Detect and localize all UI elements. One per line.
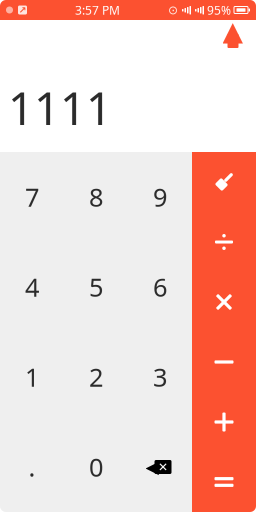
staticText: ◀ — [145, 457, 158, 477]
button[interactable]: Backspace — [128, 422, 192, 512]
staticText: 6 — [153, 270, 167, 304]
staticText: . — [28, 450, 35, 484]
staticText: 3 — [153, 360, 167, 394]
button[interactable]: Add — [192, 392, 256, 452]
staticText: 9 — [153, 180, 167, 214]
staticText: 7 — [25, 180, 39, 214]
button[interactable]: 2 — [64, 332, 128, 422]
staticText: 8 — [89, 180, 103, 214]
button[interactable]: 8 — [64, 152, 128, 242]
staticText: ⊙ — [168, 3, 178, 17]
staticText: 2 — [89, 360, 103, 394]
staticText: ✕ — [158, 460, 168, 474]
button[interactable]: Clear — [192, 152, 256, 212]
button[interactable]: 4 — [0, 242, 64, 332]
staticText: 1 — [25, 360, 39, 394]
button[interactable]: Divide — [192, 212, 256, 272]
button[interactable]: 7 — [0, 152, 64, 242]
staticText: 5 — [89, 270, 103, 304]
staticText: 95% — [207, 2, 231, 18]
staticText: ▲ — [222, 16, 243, 46]
button[interactable]: 6 — [128, 242, 192, 332]
staticText: 3:57 PM — [75, 2, 120, 18]
button[interactable]: Share result — [220, 20, 256, 50]
staticText: ↗ — [18, 5, 26, 15]
button[interactable]: 3 — [128, 332, 192, 422]
button[interactable]: 5 — [64, 242, 128, 332]
button[interactable]: 0 — [64, 422, 128, 512]
button[interactable]: Multiply — [192, 272, 256, 332]
button[interactable]: 9 — [128, 152, 192, 242]
button[interactable]: Subtract — [192, 332, 256, 392]
staticText: 4 — [25, 270, 39, 304]
staticText: 1111 — [8, 78, 112, 138]
button[interactable]: . — [0, 422, 64, 512]
button[interactable]: 1 — [0, 332, 64, 422]
staticText: 0 — [89, 450, 103, 484]
button[interactable]: Equals — [192, 452, 256, 512]
